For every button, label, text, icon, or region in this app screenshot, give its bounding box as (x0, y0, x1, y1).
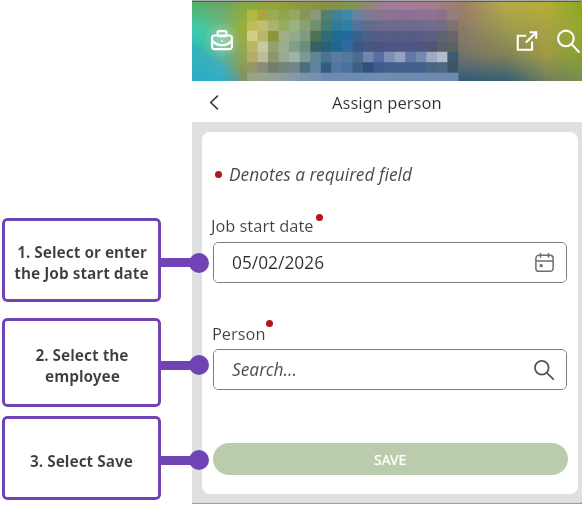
staticText: 1. Select or enter (17, 242, 147, 263)
button[interactable]: 1. Select or enter (2, 218, 161, 302)
staticText: the Job start date (14, 263, 149, 284)
staticText: 05/02/2026 (232, 251, 325, 275)
button[interactable]: Back (198, 86, 230, 118)
button[interactable]: Search (551, 24, 583, 58)
button[interactable]: SAVE (213, 443, 568, 475)
staticText: employee (45, 366, 120, 387)
staticText: 2. Select the (35, 345, 129, 366)
staticText: Person (212, 323, 266, 345)
button[interactable]: 05/02/2026 (213, 242, 567, 283)
staticText: Job start date (211, 215, 314, 237)
button[interactable]: Search... (213, 349, 567, 390)
staticText: SAVE (374, 450, 407, 469)
button[interactable]: Open in new window (510, 24, 544, 58)
staticText: Assign person (332, 91, 442, 113)
staticText: Search... (232, 358, 297, 382)
staticText: Denotes a required field (229, 163, 412, 187)
staticText: 3. Select Save (30, 451, 133, 472)
button[interactable]: 2. Select the (2, 318, 161, 407)
button[interactable]: 3. Select Save (2, 416, 161, 500)
